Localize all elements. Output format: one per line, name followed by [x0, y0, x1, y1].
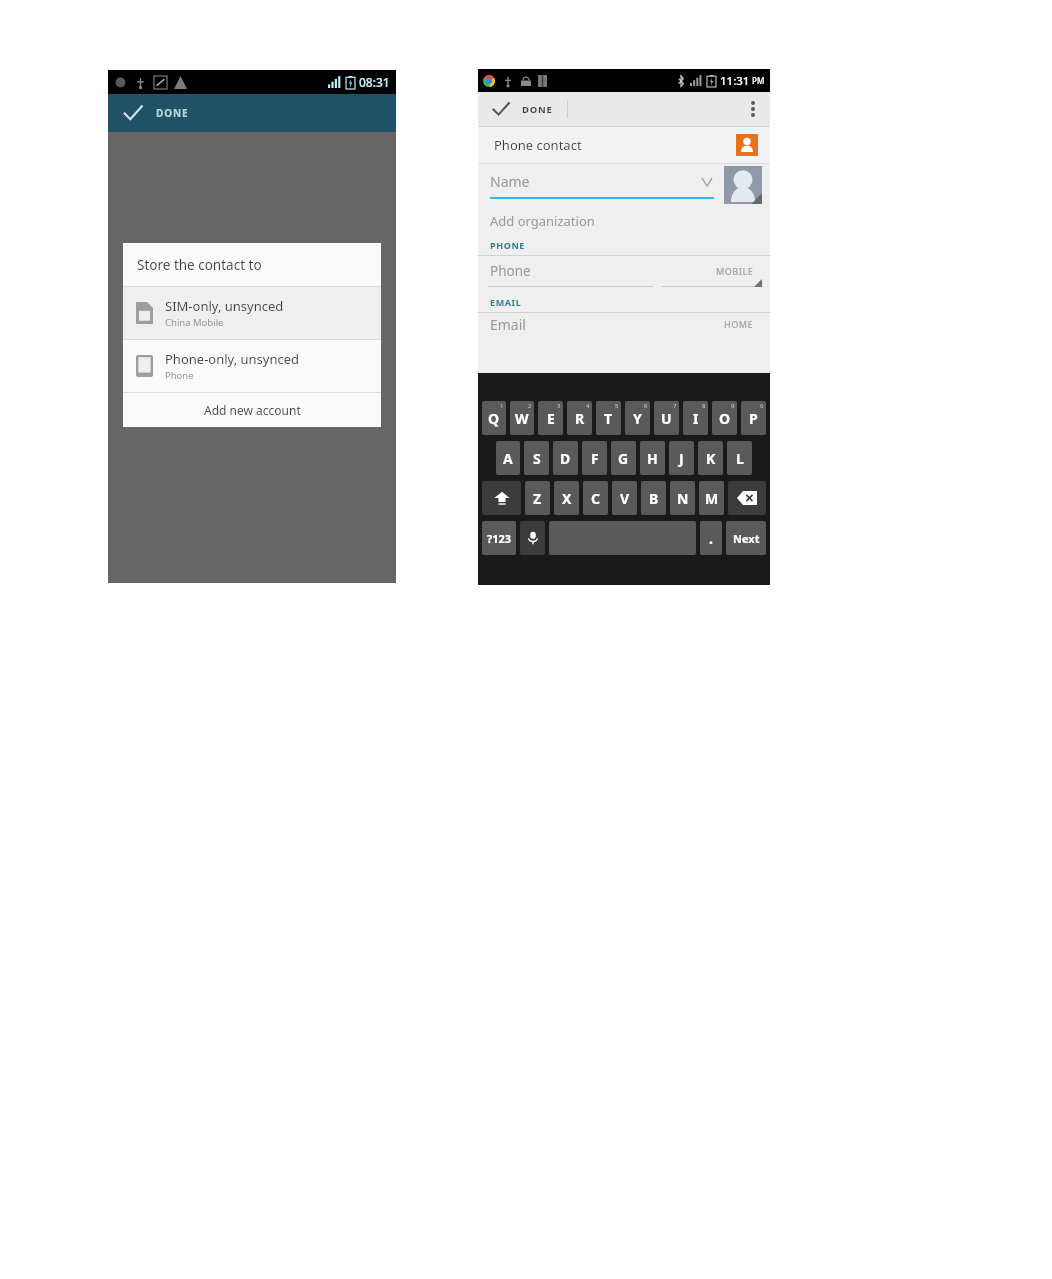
staticText: 0 [760, 402, 764, 410]
staticText: MOBILE [716, 265, 754, 277]
staticText: Phone [490, 262, 716, 280]
button[interactable]: K [698, 441, 723, 475]
staticText: EMAIL [490, 296, 522, 308]
staticText: E [547, 409, 555, 428]
staticText: Next [733, 531, 760, 546]
staticText: 2 [528, 402, 532, 410]
button[interactable]: ?123 [482, 521, 516, 555]
staticText: L [736, 449, 744, 468]
button[interactable]: E [538, 401, 563, 435]
staticText: A [503, 449, 513, 468]
staticText: W [515, 409, 529, 428]
button[interactable]: Phone contact [478, 127, 770, 163]
staticText: I [693, 409, 699, 428]
staticText: X [562, 489, 572, 508]
button[interactable]: W [510, 401, 534, 435]
staticText: J [679, 449, 684, 468]
button[interactable]: Email [478, 313, 770, 335]
button[interactable]: N [670, 481, 695, 515]
staticText: N [677, 489, 689, 508]
staticText: K [706, 449, 716, 468]
staticText: HOME [724, 318, 754, 330]
staticText: Phone-only, unsynced [165, 350, 300, 368]
staticText: SIM-only, unsynced [165, 297, 284, 315]
staticText: B [649, 489, 659, 508]
button[interactable]: Next [726, 521, 766, 555]
staticText: Email [490, 315, 724, 334]
staticText: Add organization [490, 212, 595, 230]
button[interactable]: A [496, 441, 520, 475]
staticText: Q [488, 409, 500, 428]
staticText: ?123 [487, 531, 512, 546]
staticText: F [591, 449, 599, 468]
staticText: 3 [557, 402, 561, 410]
button[interactable]: F [582, 441, 607, 475]
staticText: 08:31 [359, 74, 390, 90]
button[interactable]: SIM-only, unsynced [123, 287, 381, 339]
staticText: O [719, 409, 731, 428]
staticText: China Mobile [165, 316, 224, 329]
staticText: Phone [165, 369, 194, 382]
button[interactable]: Key [482, 481, 521, 515]
staticText: 7 [673, 402, 677, 410]
button[interactable]: Add organization [478, 206, 770, 236]
button[interactable]: S [524, 441, 549, 475]
staticText: P [749, 409, 758, 428]
button[interactable]: V [612, 481, 637, 515]
button[interactable]: X [554, 481, 579, 515]
staticText: PHONE [490, 239, 525, 251]
button[interactable]: Key [728, 481, 766, 515]
button[interactable]: J [669, 441, 694, 475]
button[interactable]: More options [736, 92, 770, 126]
staticText: T [604, 409, 613, 428]
staticText: Z [533, 489, 542, 508]
button[interactable]: Phone [478, 256, 770, 286]
button[interactable]: Add new account [123, 393, 381, 427]
staticText: S [533, 449, 541, 468]
staticText: DONE [522, 103, 553, 116]
staticText: V [620, 489, 630, 508]
staticText: 5 [615, 402, 619, 410]
staticText: DONE [156, 106, 189, 120]
staticText: PM [750, 75, 765, 86]
staticText: Phone contact [494, 136, 582, 154]
button[interactable]: Y [625, 401, 650, 435]
button[interactable]: D [553, 441, 578, 475]
staticText: U [661, 409, 672, 428]
button[interactable]: M [699, 481, 724, 515]
button[interactable]: P [741, 401, 766, 435]
button[interactable]: DONE [478, 92, 567, 126]
button[interactable]: B [641, 481, 666, 515]
staticText: 9 [731, 402, 735, 410]
staticText: C [591, 489, 600, 508]
staticText: 1 [500, 402, 504, 410]
button[interactable]: DONE [108, 94, 396, 132]
staticText: . [709, 529, 713, 548]
button[interactable]: H [640, 441, 665, 475]
button[interactable]: Z [525, 481, 550, 515]
staticText: 11:31 [720, 73, 750, 89]
staticText: Name [490, 172, 702, 191]
button[interactable]: Q [482, 401, 506, 435]
button[interactable]: C [583, 481, 608, 515]
staticText: Add new account [204, 402, 301, 418]
staticText: 8 [702, 402, 706, 410]
staticText: R [575, 409, 585, 428]
button[interactable]: Name [490, 172, 714, 199]
button[interactable]: G [611, 441, 636, 475]
staticText: H [647, 449, 658, 468]
staticText: 6 [644, 402, 648, 410]
button[interactable]: O [712, 401, 737, 435]
button[interactable]: I [683, 401, 708, 435]
button[interactable]: R [567, 401, 592, 435]
staticText: Store the contact to [137, 256, 262, 274]
button[interactable]: Key [520, 521, 545, 555]
staticText: 4 [586, 402, 590, 410]
button[interactable]: . [700, 521, 722, 555]
button[interactable]: L [727, 441, 752, 475]
button[interactable]: U [654, 401, 679, 435]
staticText: G [618, 449, 629, 468]
button[interactable]: T [596, 401, 621, 435]
button[interactable]: Phone-only, unsynced [123, 340, 381, 392]
